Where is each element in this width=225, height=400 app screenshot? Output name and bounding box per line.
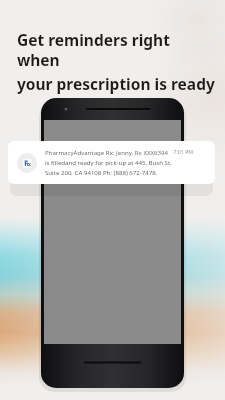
staticText: PharmacyAdvantage Rx: Jenny, Rx XXX6394 (45, 148, 169, 156)
other: PharmacyAdvantage app icon (17, 153, 37, 173)
staticText: your prescription is ready (17, 73, 215, 94)
staticText: Suite 200, CA 94108 Ph: (888) 672-7478. (45, 168, 158, 176)
staticText: is filledand ready for pick-up at 445, B… (45, 158, 172, 166)
staticText: 7:01 PM (173, 148, 193, 155)
staticText: Get reminders right when (17, 29, 215, 71)
button[interactable]: PharmacyAdvantage app icon (8, 141, 215, 184)
